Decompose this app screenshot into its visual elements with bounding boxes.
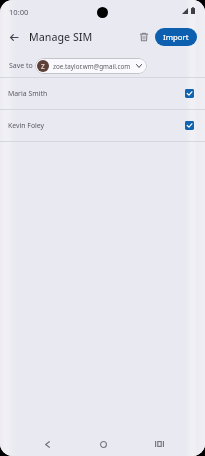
- staticText: zoe.taylor.wm@gmail.com: [53, 62, 131, 71]
- button[interactable]: Back: [3, 26, 25, 48]
- button[interactable]: Import: [155, 28, 197, 46]
- button[interactable]: Recent apps: [146, 431, 172, 456]
- staticText: Maria Smith: [8, 89, 48, 98]
- button[interactable]: Maria Smith: [0, 77, 205, 109]
- staticText: Save to: [9, 61, 33, 71]
- button[interactable]: Back: [34, 431, 60, 456]
- button[interactable]: Kevin Foley: [0, 109, 205, 141]
- staticText: 10:00: [9, 7, 29, 17]
- button[interactable]: Delete: [133, 26, 155, 48]
- button[interactable]: Z: [35, 58, 147, 74]
- staticText: Z: [41, 62, 45, 71]
- staticText: Kevin Foley: [8, 121, 45, 130]
- staticText: Import: [163, 32, 189, 43]
- staticText: Manage SIM: [29, 30, 93, 44]
- button[interactable]: Home: [90, 431, 116, 456]
